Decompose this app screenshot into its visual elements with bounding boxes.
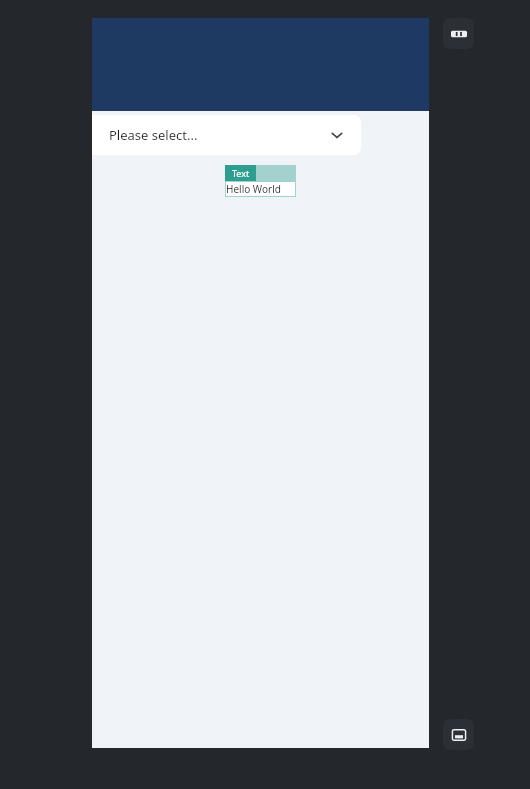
staticText: Text: [232, 167, 250, 179]
button[interactable]: Please select...: [92, 115, 361, 155]
staticText: Hello World: [226, 182, 281, 196]
button[interactable]: Toggle device frame: [443, 18, 474, 49]
staticText: Please select...: [109, 126, 198, 144]
button[interactable]: Open window view: [443, 719, 474, 750]
